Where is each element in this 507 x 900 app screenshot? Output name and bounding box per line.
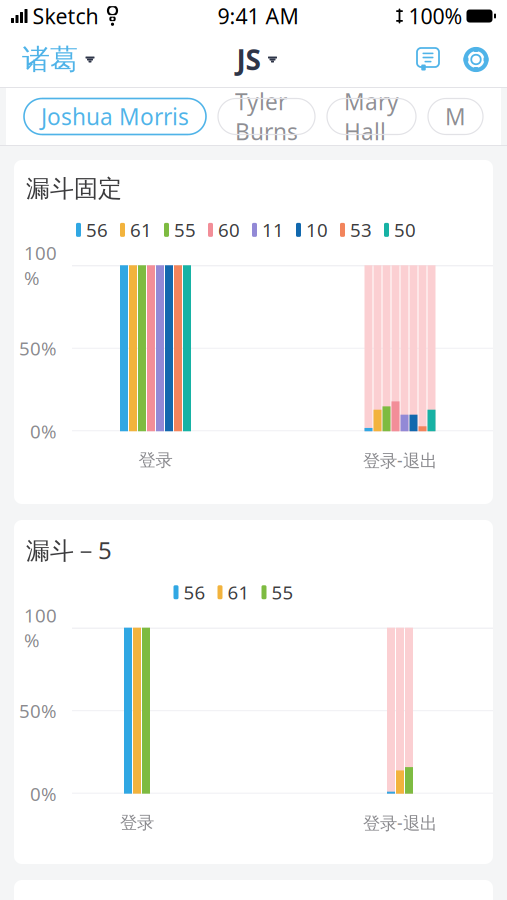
staticText: 55 xyxy=(174,217,196,242)
button[interactable]: JS xyxy=(232,35,281,84)
staticText: 60 xyxy=(218,217,240,242)
staticText: 诸葛 xyxy=(22,42,78,77)
staticText: 100% xyxy=(24,240,57,290)
button[interactable]: M xyxy=(428,98,483,134)
staticText: 53 xyxy=(350,217,372,242)
staticText: 56 xyxy=(183,580,205,605)
button[interactable]: Settings xyxy=(463,46,489,72)
staticText: 9:41 AM xyxy=(217,2,298,30)
staticText: 55 xyxy=(271,580,293,605)
staticText: 登录-退出 xyxy=(363,811,437,834)
staticText: 50% xyxy=(19,336,57,361)
staticText: 漏斗固定 xyxy=(26,174,122,203)
staticText: 50% xyxy=(19,698,57,723)
staticText: 50 xyxy=(394,217,416,242)
button[interactable]: Tyler Burns xyxy=(218,98,315,134)
staticText: 61 xyxy=(227,580,249,605)
staticText: Tyler Burns xyxy=(235,86,298,147)
staticText: 61 xyxy=(130,217,152,242)
staticText: 0% xyxy=(30,419,57,444)
staticText: M xyxy=(445,101,466,131)
staticText: 10 xyxy=(306,217,328,242)
staticText: 登录-退出 xyxy=(363,449,437,472)
staticText: 登录 xyxy=(138,450,172,471)
button[interactable]: Mary Hall xyxy=(327,98,416,134)
staticText: Sketch xyxy=(32,2,98,30)
staticText: 11 xyxy=(262,217,284,242)
staticText: 56 xyxy=(86,217,108,242)
staticText: 漏斗－5 xyxy=(26,534,112,566)
staticText: 100% xyxy=(24,603,57,652)
staticText: JS xyxy=(236,41,260,78)
staticText: 0% xyxy=(30,781,57,806)
staticText: Joshua Morris xyxy=(41,101,189,131)
button[interactable]: Joshua Morris xyxy=(24,98,206,134)
button[interactable]: Messages xyxy=(415,46,441,72)
staticText: 登录 xyxy=(120,812,154,833)
staticText: Mary Hall xyxy=(344,86,399,147)
button[interactable]: 诸葛 xyxy=(18,36,99,83)
staticText: 100% xyxy=(408,2,462,30)
